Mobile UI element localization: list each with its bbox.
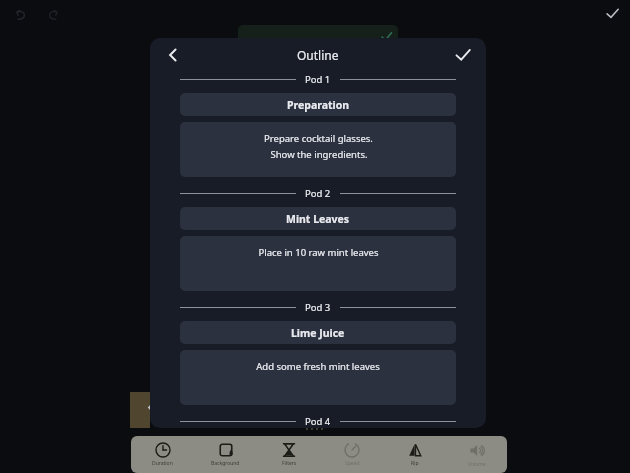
staticText: Preparation [287,98,350,112]
button[interactable]: Done [448,40,478,70]
staticText: Lime Juice [291,326,345,340]
button[interactable]: Duration [131,436,194,473]
button[interactable]: Lime Juice [180,321,456,344]
button[interactable]: Redo [40,2,66,28]
button[interactable]: Add some fresh mint leaves [180,350,456,405]
button[interactable]: Rip [383,436,446,473]
staticText: Pod 1 [305,73,331,86]
staticText: Add some fresh mint leaves [256,360,380,373]
button[interactable]: Back [158,40,188,70]
button[interactable]: Filters [257,436,320,473]
button[interactable]: Volume [446,436,507,473]
staticText: Speed [345,460,360,467]
staticText: Duration [152,460,173,467]
button[interactable]: Place in 10 raw mint leaves [180,236,456,291]
staticText: Mint Leaves [286,212,350,226]
staticText: Rip [411,460,419,467]
button[interactable]: Undo [8,2,34,28]
staticText: Place in 10 raw mint leaves [258,246,379,259]
button[interactable]: Speed [320,436,383,473]
staticText: Background [211,460,240,467]
staticText: Pod 3 [305,301,331,314]
staticText: Filters [282,460,297,467]
button[interactable]: Background [194,436,257,473]
staticText: Prepare cocktail glasses. [264,132,373,145]
button[interactable]: Mint Leaves [180,207,456,230]
button[interactable]: Prepare cocktail glasses. [180,122,456,177]
button[interactable]: Preparation [180,93,456,116]
button[interactable]: Confirm [600,1,624,25]
staticText: Pod 4 [305,415,331,428]
staticText: Volume [468,461,486,468]
staticText: Outline [297,47,339,63]
staticText: Show the ingredients. [270,148,368,161]
staticText: Pod 2 [305,187,331,200]
